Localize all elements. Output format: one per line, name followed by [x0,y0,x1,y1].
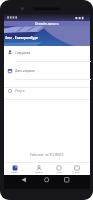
button[interactable]: Услуга [4,87,90,99]
button[interactable]: Сотрудник [4,46,90,62]
staticText: Работает на YCLIENTS [30,153,64,157]
staticText: Инфо [56,171,62,174]
button[interactable]: Записи [30,163,48,175]
staticText: Онлайн-запись [35,22,59,26]
button[interactable]: Онлайн-запись [4,21,90,26]
button[interactable]: Дата и время [4,62,90,79]
staticText: Еще [75,171,80,174]
staticText: Дата и время [15,69,35,73]
button[interactable]: Запись [6,163,24,175]
staticText: Услуга [15,89,25,93]
button[interactable]: Еще [68,163,86,175]
staticText: Запись [11,171,19,174]
button[interactable]: Инфо [50,163,68,175]
staticText: 4me - Екатеринбург [5,35,39,39]
staticText: Записи [35,171,43,174]
staticText: Сотрудник [15,51,31,55]
